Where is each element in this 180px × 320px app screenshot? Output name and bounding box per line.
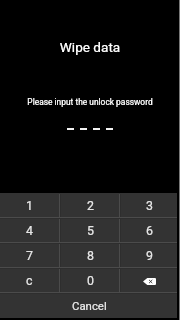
staticText: 1 xyxy=(26,198,33,213)
staticText: 2 xyxy=(87,198,94,213)
staticText: 4 xyxy=(26,223,33,238)
button[interactable]: 2 xyxy=(61,194,119,217)
staticText: Please input the unlock password xyxy=(0,97,180,107)
staticText: Cancel xyxy=(72,299,107,312)
staticText: 7 xyxy=(26,248,33,263)
button[interactable]: 0 xyxy=(61,269,119,292)
staticText: 0 xyxy=(87,273,94,288)
staticText: 6 xyxy=(146,223,153,238)
button[interactable]: c xyxy=(0,269,59,292)
button[interactable]: 7 xyxy=(0,244,59,267)
button[interactable]: 6 xyxy=(121,219,177,242)
button[interactable]: 8 xyxy=(61,244,119,267)
staticText: 9 xyxy=(146,248,153,263)
staticText: c xyxy=(26,273,33,288)
button[interactable]: Cancel xyxy=(0,294,177,318)
button[interactable]: Delete xyxy=(121,269,177,292)
button[interactable]: 3 xyxy=(121,194,177,217)
other: Delete xyxy=(143,278,156,285)
button[interactable]: 1 xyxy=(0,194,59,217)
button[interactable]: 5 xyxy=(61,219,119,242)
button[interactable]: 9 xyxy=(121,244,177,267)
staticText: 8 xyxy=(87,248,94,263)
button[interactable]: 4 xyxy=(0,219,59,242)
staticText: 3 xyxy=(146,198,153,213)
staticText: 5 xyxy=(87,223,94,238)
staticText: Wipe data xyxy=(0,39,180,55)
